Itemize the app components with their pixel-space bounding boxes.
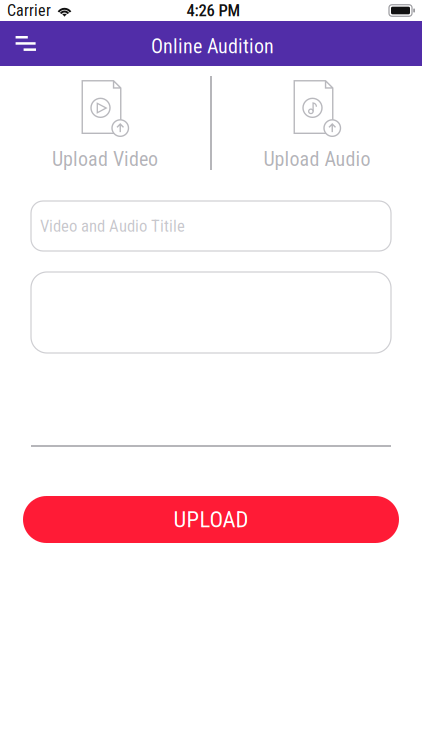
staticText: Video and Audio Titile <box>40 216 185 236</box>
staticText: Upload Audio <box>263 147 370 171</box>
staticText: Carrier <box>7 1 51 20</box>
staticText: Upload Video <box>52 147 158 171</box>
button[interactable]: UPLOAD <box>23 496 399 543</box>
staticText: UPLOAD <box>173 506 248 533</box>
staticText: 4:26 PM <box>186 1 240 20</box>
button[interactable]: Upload Audio <box>212 75 422 171</box>
button[interactable]: Menu <box>2 21 50 66</box>
staticText: Online Audition <box>151 35 274 58</box>
button[interactable]: Upload Video <box>0 75 210 171</box>
